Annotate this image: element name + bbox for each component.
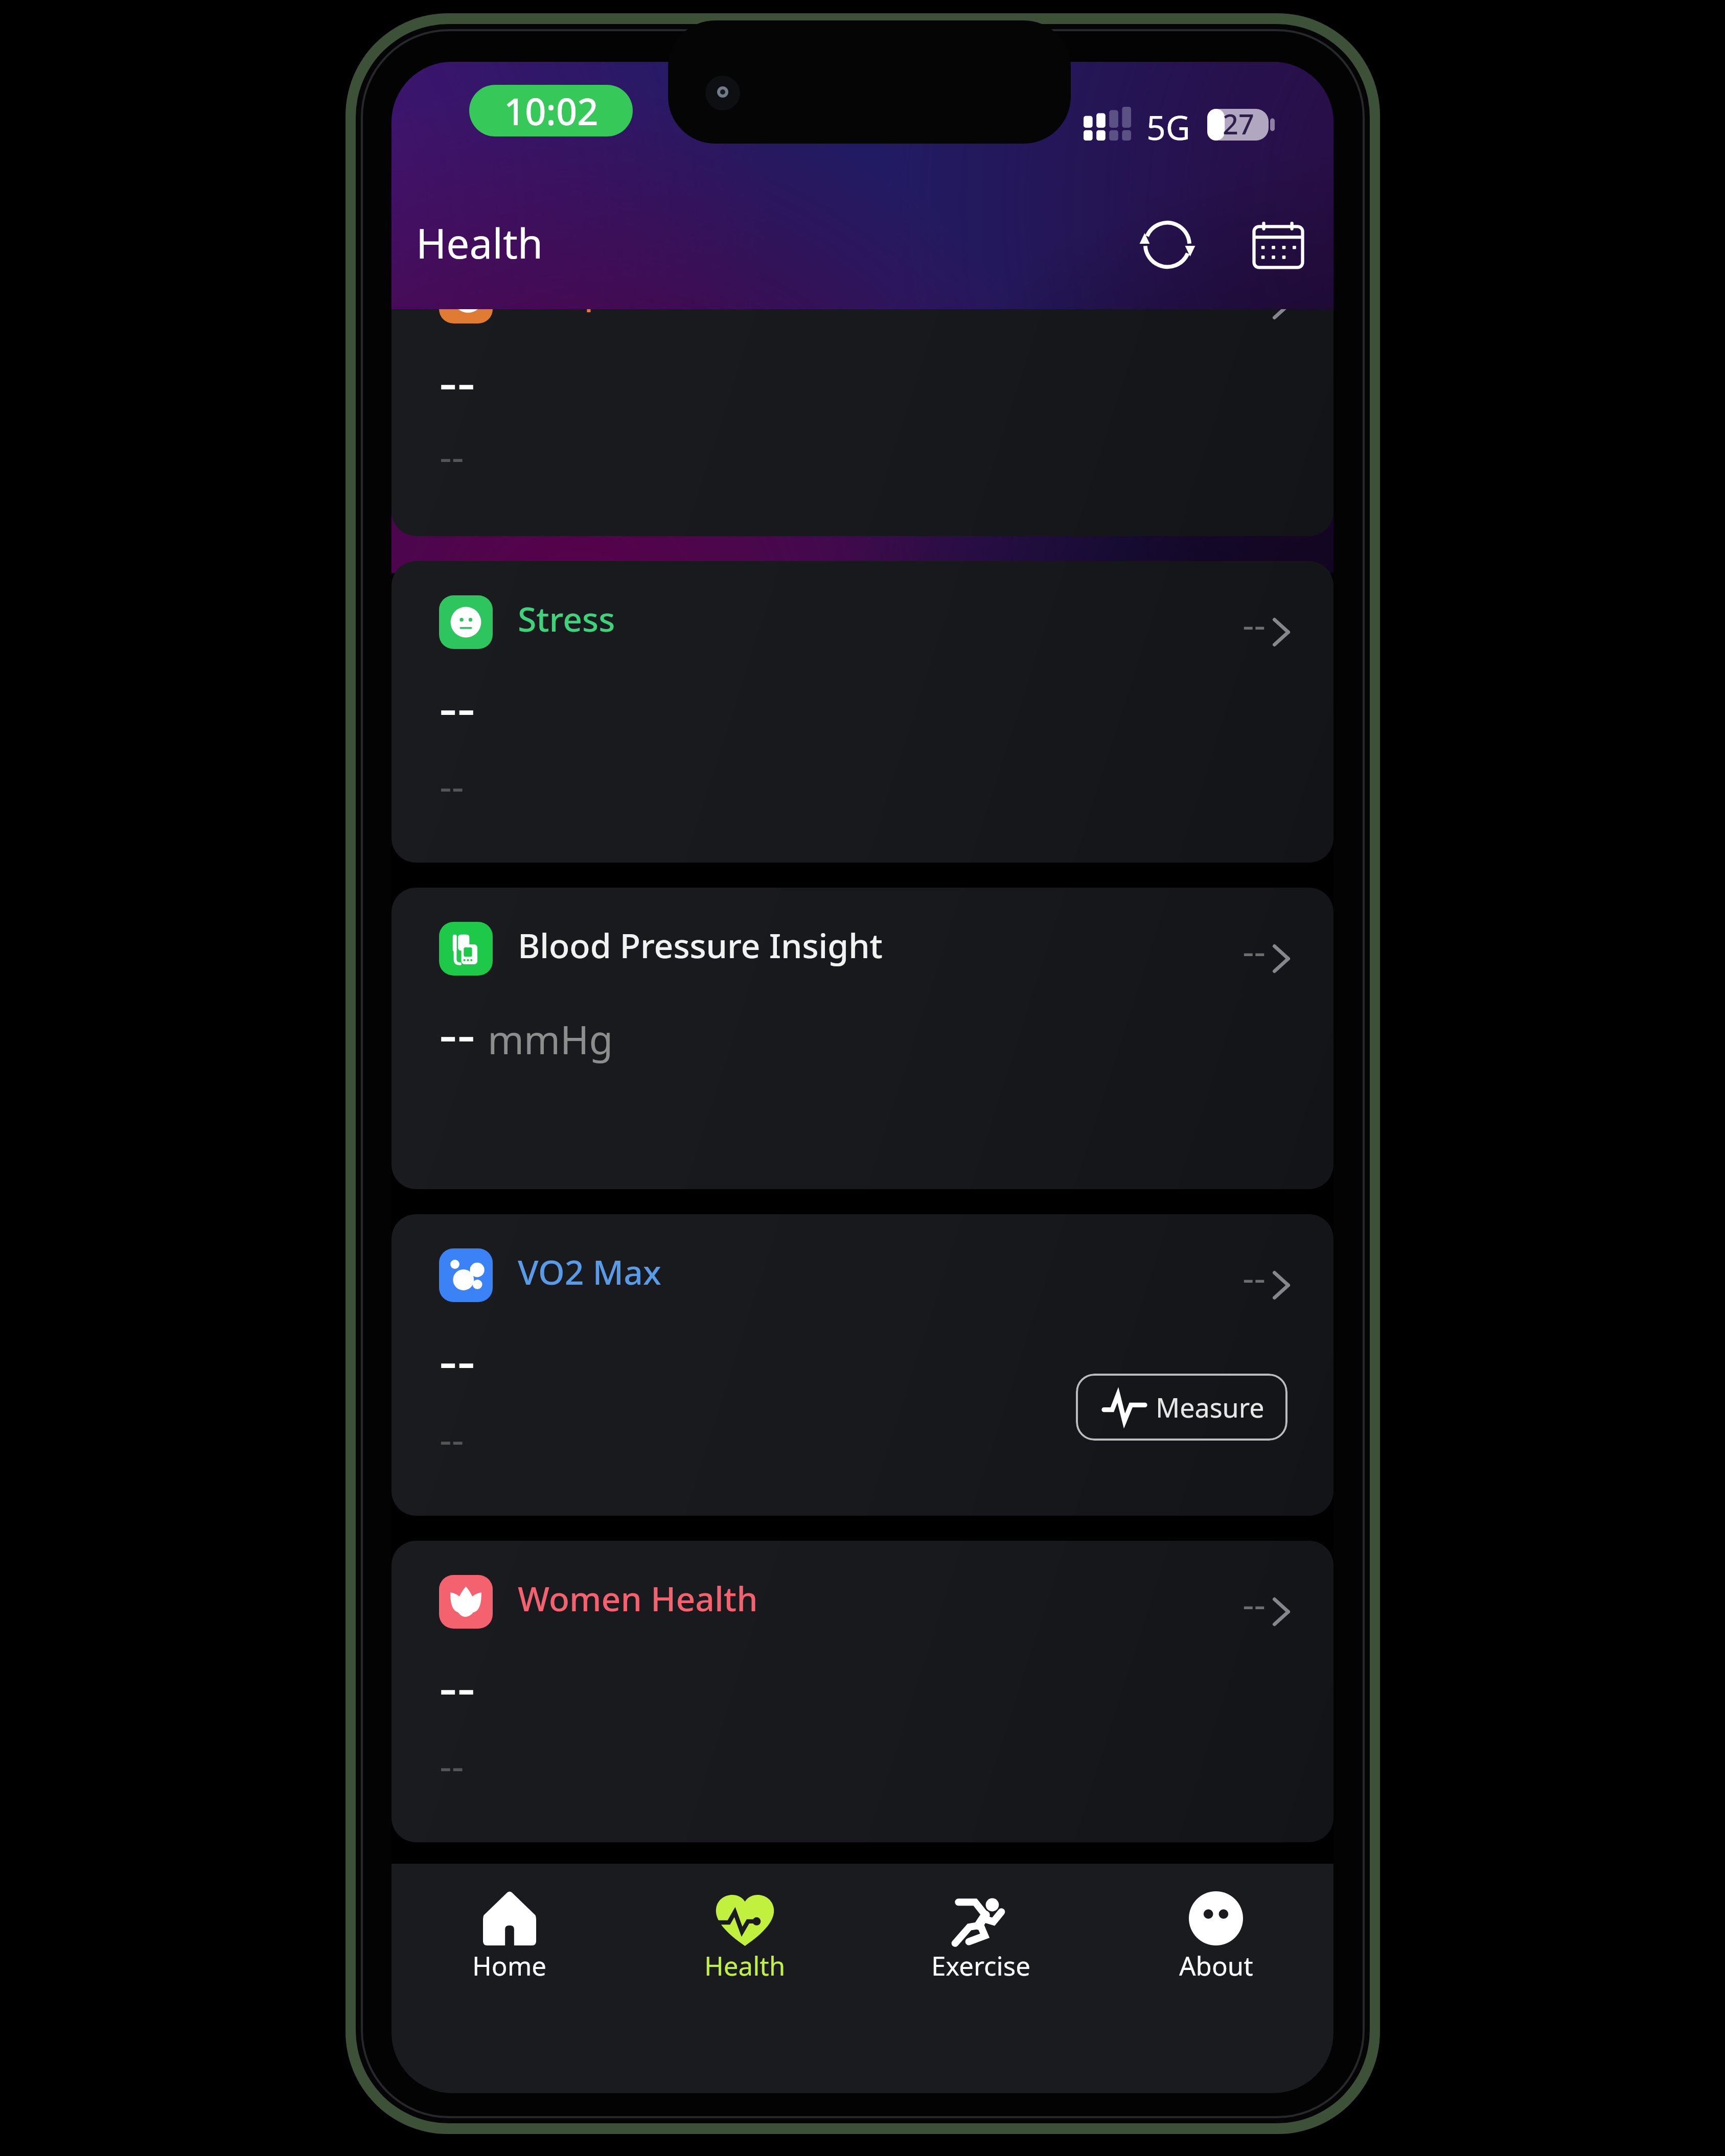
staticText: -- [440,430,464,482]
staticText: -- [439,342,475,419]
staticText: Women Health [518,1575,758,1621]
staticText: About [1179,1948,1253,1983]
staticText: mmHg [488,1013,613,1066]
staticText: -- [439,994,475,1071]
staticText: -- [440,1413,464,1465]
button[interactable]: Sleep [392,309,1333,536]
staticText: -- [1243,599,1266,648]
button[interactable]: Measure [1076,1374,1287,1441]
staticText: -- [439,667,475,744]
staticText: Health [416,215,543,270]
staticText: Health [704,1948,786,1983]
staticText: -- [439,1320,475,1397]
staticText: 27 [1223,105,1254,143]
button[interactable]: Health [627,1864,863,1997]
staticText: -- [1243,926,1266,975]
staticText: -- [440,1740,464,1791]
staticText: Blood Pressure Insight [518,922,883,968]
button[interactable]: Calendar [1245,211,1312,279]
button[interactable]: Stress [392,561,1333,863]
staticText: 5G [1146,104,1190,150]
button[interactable]: Refresh [1134,211,1201,279]
staticText: Stress [518,595,615,641]
button[interactable]: Women Health [392,1541,1333,1842]
staticText: Measure [1156,1389,1264,1425]
staticText: VO2 Max [518,1248,661,1294]
staticText: Sleep [518,309,605,314]
button[interactable]: VO2 Max [392,1214,1333,1516]
staticText: -- [1243,1253,1266,1301]
staticText: Home [472,1948,547,1983]
staticText: 10:02 [504,86,599,136]
staticText: -- [440,760,464,812]
button[interactable]: Exercise [863,1864,1098,1997]
button[interactable]: About [1098,1864,1333,1997]
staticText: -- [1243,1579,1266,1628]
staticText: Exercise [931,1948,1030,1983]
staticText: -- [439,1647,475,1724]
button[interactable]: Blood Pressure Insight [392,888,1333,1189]
button[interactable]: Home [392,1864,627,1997]
